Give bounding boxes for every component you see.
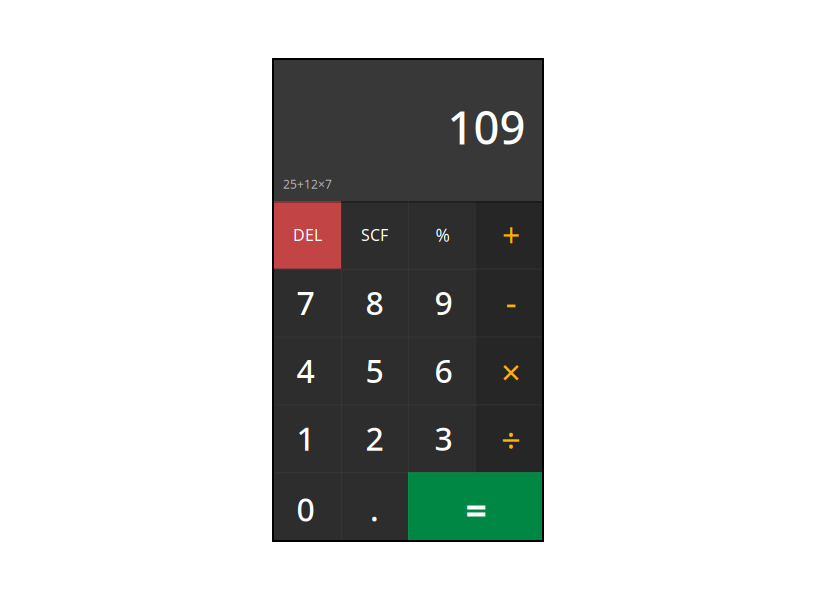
staticText: - [505, 279, 516, 325]
button[interactable]: 1 [274, 404, 341, 472]
staticText: % [435, 223, 449, 246]
button[interactable]: Subtract [475, 269, 542, 337]
button[interactable]: Percent [408, 201, 475, 269]
staticText: ÷ [501, 416, 521, 462]
button[interactable]: 5 [341, 337, 408, 404]
staticText: × [501, 348, 521, 394]
button[interactable]: 4 [274, 337, 341, 404]
staticText: = [465, 485, 486, 535]
button[interactable]: 9 [408, 269, 475, 337]
staticText: + [502, 214, 520, 256]
button[interactable]: Delete [274, 201, 341, 269]
staticText: SCF [361, 224, 388, 245]
staticText: 1 [296, 417, 314, 460]
button[interactable]: Equals [408, 472, 542, 540]
staticText: . [370, 488, 379, 530]
button[interactable]: 7 [274, 269, 341, 337]
staticText: 3 [434, 417, 452, 460]
staticText: 5 [365, 349, 383, 392]
button[interactable]: Decimal point [341, 472, 408, 540]
staticText: 0 [296, 488, 314, 530]
button[interactable]: Multiply [475, 337, 542, 404]
staticText: 109 [447, 97, 525, 157]
button[interactable]: 2 [341, 404, 408, 472]
staticText: 8 [365, 281, 383, 324]
button[interactable]: Add [475, 201, 542, 269]
staticText: 4 [296, 349, 314, 392]
staticText: 9 [434, 281, 452, 324]
button[interactable]: 3 [408, 404, 475, 472]
button[interactable]: Divide [475, 404, 542, 472]
staticText: 7 [296, 281, 314, 324]
button[interactable]: 8 [341, 269, 408, 337]
staticText: 6 [434, 349, 452, 392]
button[interactable]: SCF [341, 201, 408, 269]
button[interactable]: 0 [274, 472, 341, 540]
staticText: DEL [293, 224, 322, 245]
staticText: 25+12×7 [283, 176, 332, 192]
button[interactable]: 6 [408, 337, 475, 404]
staticText: 2 [365, 417, 383, 460]
